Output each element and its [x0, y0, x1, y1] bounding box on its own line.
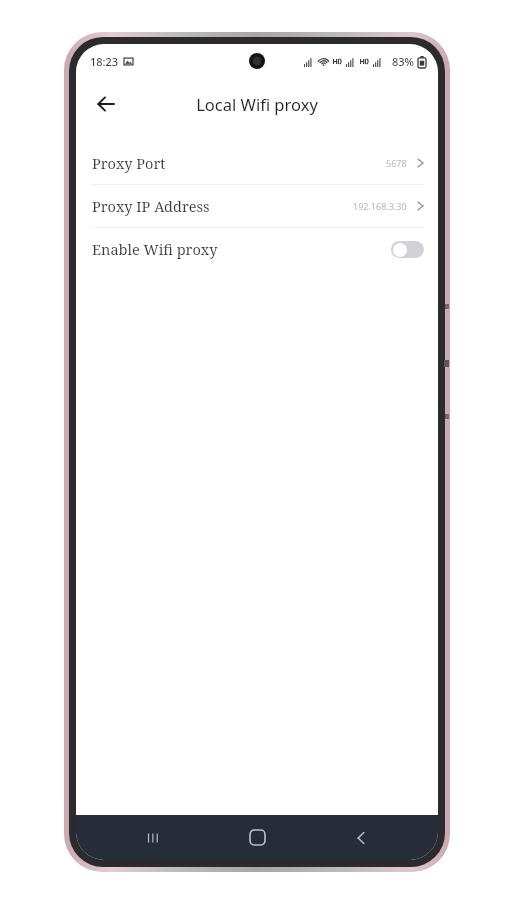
button[interactable]: Proxy Port: [76, 142, 438, 184]
staticText: 192.168.3.30: [353, 200, 407, 212]
button[interactable]: Recent apps: [126, 815, 180, 860]
staticText: 83%: [392, 54, 414, 69]
staticText: Enable Wifi proxy: [92, 239, 218, 259]
button[interactable]: Back: [334, 815, 388, 860]
staticText: Proxy IP Address: [92, 196, 210, 216]
staticText: 18:23: [90, 54, 119, 69]
button[interactable]: Back: [84, 82, 128, 126]
staticText: Proxy Port: [92, 153, 166, 173]
button[interactable]: Enable Wifi proxy: [76, 228, 438, 270]
button[interactable]: Proxy IP Address: [76, 185, 438, 227]
staticText: Local Wifi proxy: [196, 93, 318, 115]
button[interactable]: Home: [230, 815, 284, 860]
staticText: 5678: [386, 157, 407, 169]
